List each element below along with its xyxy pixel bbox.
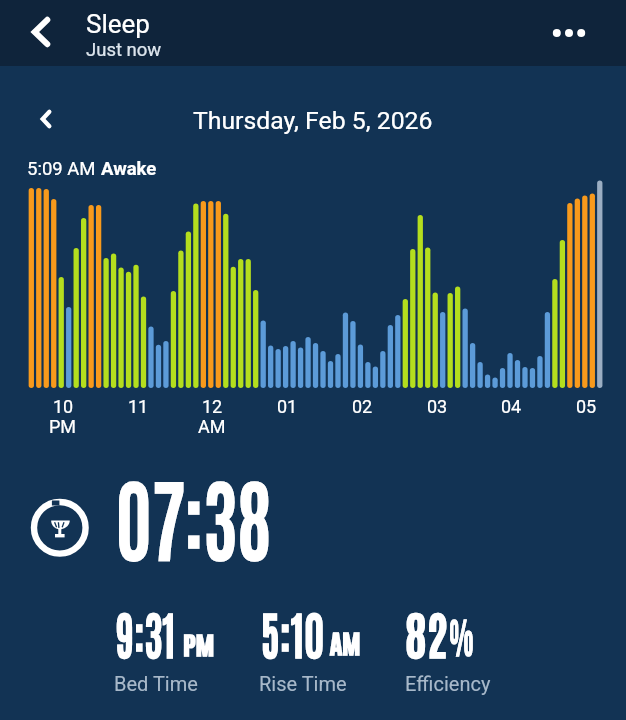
staticText: 82 bbox=[405, 599, 449, 665]
staticText: Sleep bbox=[86, 9, 150, 39]
staticText: 07:38 bbox=[116, 456, 271, 572]
staticText: Just now bbox=[86, 39, 162, 61]
staticText: 04 bbox=[501, 396, 522, 417]
staticText: PM bbox=[183, 628, 215, 659]
button[interactable]: Previous day bbox=[24, 97, 68, 141]
staticText: 12 bbox=[202, 396, 223, 417]
staticText: 10 bbox=[53, 396, 74, 417]
staticText: 5:10 bbox=[261, 599, 325, 665]
staticText: 01 bbox=[277, 396, 298, 417]
staticText: 03 bbox=[427, 396, 448, 417]
staticText: Bed Time bbox=[114, 672, 198, 695]
staticText: % bbox=[449, 607, 474, 661]
staticText: 5:10 bbox=[261, 599, 325, 665]
staticText: 82 bbox=[405, 599, 449, 665]
staticText: Efficiency bbox=[405, 672, 491, 695]
staticText: 11 bbox=[128, 396, 149, 417]
staticText: AM bbox=[330, 625, 361, 659]
staticText: 9:31 bbox=[116, 599, 176, 665]
staticText: 9:31 bbox=[116, 599, 176, 665]
staticText: AM bbox=[198, 416, 226, 437]
staticText: 5:09 AM bbox=[27, 158, 96, 180]
staticText: 05 bbox=[576, 396, 597, 417]
staticText: PM bbox=[49, 416, 77, 437]
staticText: Rise Time bbox=[259, 672, 347, 695]
staticText: 02 bbox=[352, 396, 373, 417]
staticText: % bbox=[449, 607, 474, 661]
button[interactable]: Navigate up bbox=[13, 5, 69, 59]
staticText: AM bbox=[330, 625, 361, 659]
staticText: Thursday, Feb 5, 2026 bbox=[193, 106, 433, 135]
staticText: PM bbox=[183, 628, 215, 659]
staticText: Awake bbox=[101, 158, 157, 180]
button[interactable]: More options bbox=[547, 6, 591, 60]
staticText: 07:38 bbox=[116, 456, 271, 572]
